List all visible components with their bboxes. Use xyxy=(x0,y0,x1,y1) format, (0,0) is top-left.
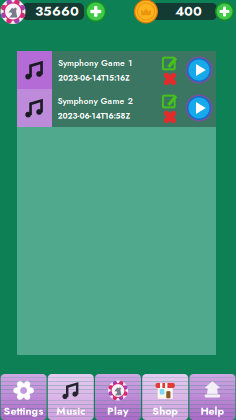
button[interactable]: Delete xyxy=(160,108,179,126)
staticText: Settings xyxy=(4,403,44,419)
button[interactable]: Edit xyxy=(160,91,179,109)
button[interactable]: Add xyxy=(214,1,235,22)
button[interactable]: Music xyxy=(48,374,94,420)
button[interactable]: Add xyxy=(84,0,107,23)
staticText: 400 xyxy=(175,1,202,21)
button[interactable]: Settings xyxy=(1,374,47,420)
staticText: Help xyxy=(200,403,224,419)
staticText: Symphony Game 2 xyxy=(57,95,132,107)
staticText: Play xyxy=(107,403,129,419)
staticText: 35660 xyxy=(35,1,79,21)
button[interactable]: Play xyxy=(183,91,214,124)
button[interactable]: Help xyxy=(189,374,235,420)
button[interactable]: Play xyxy=(95,374,141,420)
staticText: 2023-06-14T16:58Z xyxy=(57,110,130,122)
staticText: Symphony Game 1 xyxy=(58,57,132,69)
staticText: Shop xyxy=(152,403,178,419)
button[interactable]: Delete xyxy=(160,70,179,88)
staticText: 2023-06-14T15:16Z xyxy=(58,72,130,84)
button[interactable]: Shop xyxy=(142,374,188,420)
staticText: Music xyxy=(56,403,85,419)
button[interactable]: Play xyxy=(183,53,214,86)
button[interactable]: Edit xyxy=(160,53,179,71)
